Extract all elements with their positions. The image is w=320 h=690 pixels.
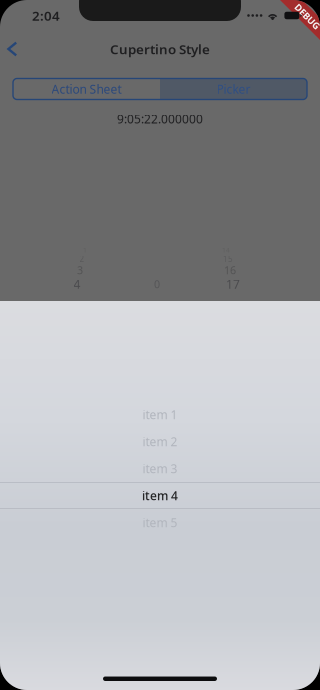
button[interactable]: item 4 bbox=[0, 482, 320, 509]
staticText: Picker bbox=[216, 81, 250, 97]
staticText: Action Sheet bbox=[51, 81, 121, 97]
button[interactable]: Picker bbox=[160, 78, 307, 99]
staticText: Cupertino Style bbox=[110, 40, 210, 58]
staticText: 2 bbox=[79, 254, 84, 264]
staticText: 16 bbox=[224, 263, 236, 277]
staticText: item 5 bbox=[142, 514, 177, 530]
staticText: DEBUG bbox=[291, 10, 320, 23]
staticText: 9:05:22.000000 bbox=[117, 111, 203, 127]
button[interactable]: Action Sheet bbox=[13, 78, 160, 99]
staticText: 4 bbox=[73, 276, 80, 292]
staticText: item 3 bbox=[142, 460, 177, 476]
staticText: 15 bbox=[223, 254, 233, 264]
staticText: item 4 bbox=[142, 487, 178, 503]
staticText: 2:04 bbox=[32, 7, 60, 24]
staticText: 17 bbox=[226, 276, 240, 292]
staticText: 3 bbox=[77, 263, 83, 277]
staticText: 0 bbox=[154, 277, 160, 291]
button[interactable]: Back bbox=[0, 36, 31, 62]
staticText: item 1 bbox=[142, 406, 177, 422]
staticText: item 2 bbox=[142, 433, 177, 449]
